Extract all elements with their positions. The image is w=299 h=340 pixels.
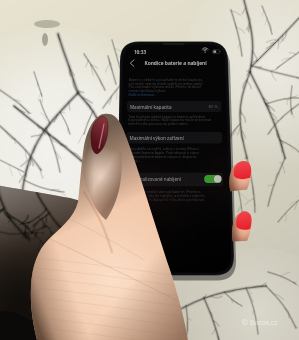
- button[interactable]: [0, 0, 299, 340]
